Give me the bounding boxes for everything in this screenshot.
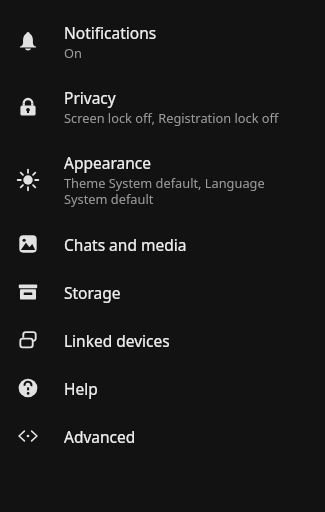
staticText: Notifications (64, 22, 157, 43)
staticText: Storage (64, 282, 121, 303)
staticText: Advanced (64, 426, 136, 447)
staticText: Chats and media (64, 234, 187, 255)
other: Notifications (17, 31, 39, 53)
other: Storage (17, 281, 39, 303)
staticText: Help (64, 378, 98, 399)
staticText: Linked devices (64, 330, 170, 351)
button[interactable]: Help (0, 364, 325, 412)
staticText: On (64, 44, 82, 61)
button[interactable]: Linked devices (0, 316, 325, 364)
staticText: Screen lock off, Registration lock off (64, 109, 279, 126)
staticText: Privacy (64, 87, 116, 108)
other: Privacy (17, 96, 39, 118)
other: Appearance (17, 169, 39, 191)
button[interactable]: Notifications (0, 9, 325, 74)
button[interactable]: Appearance (0, 139, 325, 220)
other: Linked devices (17, 329, 39, 351)
button[interactable]: Advanced (0, 412, 325, 460)
button[interactable]: Storage (0, 268, 325, 316)
other: Advanced (17, 425, 39, 447)
staticText: Appearance (64, 152, 151, 173)
button[interactable]: Privacy (0, 74, 325, 139)
staticText: Theme System default, Language System de… (64, 174, 309, 207)
button[interactable]: Chats and media (0, 220, 325, 268)
other: Chats and media (17, 233, 39, 255)
other: Help (17, 377, 39, 399)
